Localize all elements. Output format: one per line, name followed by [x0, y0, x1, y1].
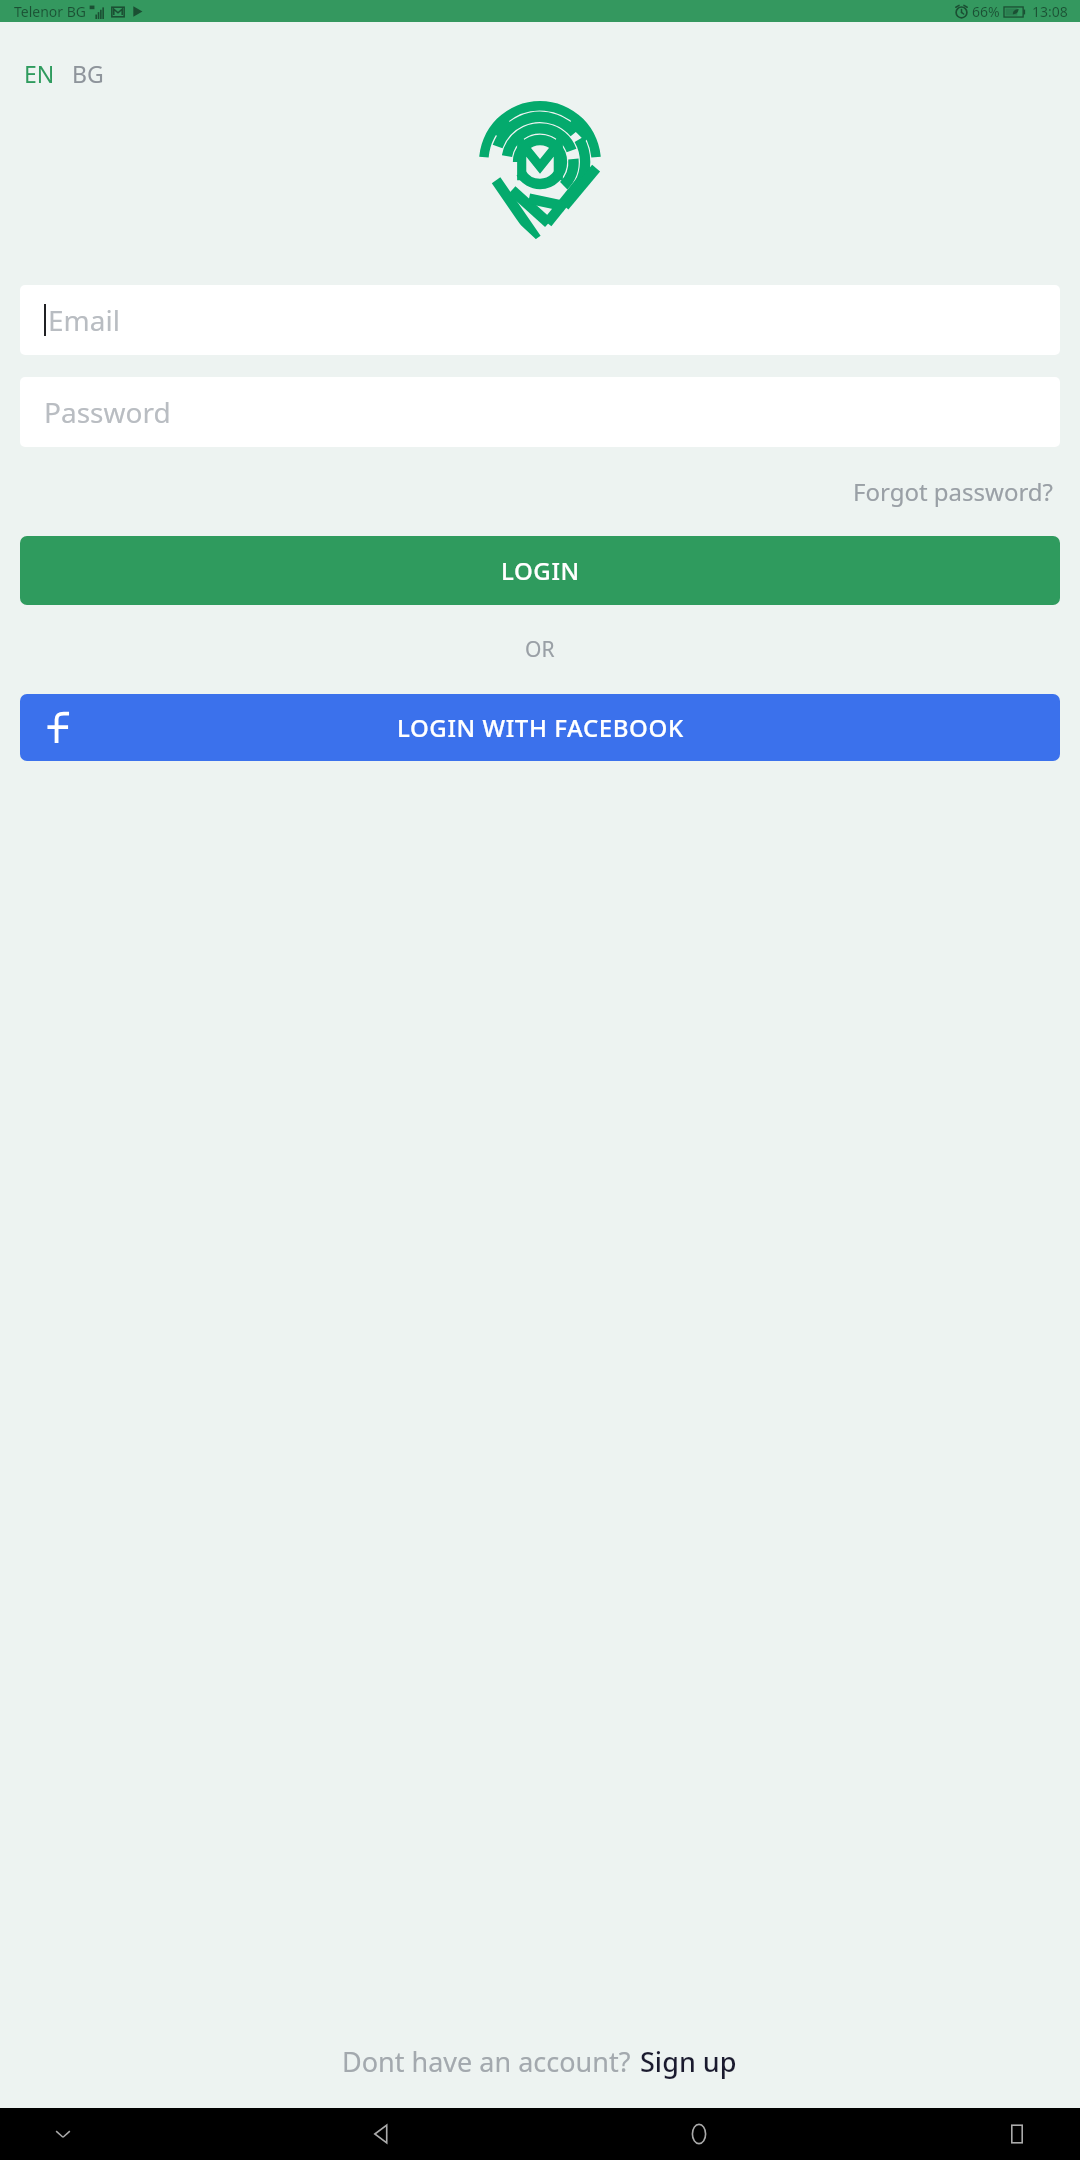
staticText: Sign up [640, 2043, 737, 2080]
staticText: EN [24, 58, 55, 89]
staticText: Telenor BG [14, 2, 87, 21]
button[interactable]: LOGIN WITH FACEBOOK [20, 694, 1060, 761]
button[interactable]: Recent apps [994, 2111, 1040, 2157]
staticText: OR [525, 635, 555, 664]
staticText: 66% [972, 2, 1000, 21]
button[interactable]: Hide keyboard [40, 2111, 86, 2157]
staticText: Email [48, 301, 120, 339]
button[interactable]: Sign up [638, 2041, 739, 2082]
staticText: Forgot password? [853, 475, 1054, 508]
button[interactable]: Email [20, 285, 1060, 355]
button[interactable]: Password [20, 377, 1060, 447]
staticText: LOGIN WITH FACEBOOK [397, 711, 684, 744]
staticText: LOGIN [501, 554, 580, 587]
button[interactable]: EN [22, 56, 57, 91]
button[interactable]: Home [676, 2111, 722, 2157]
button[interactable]: LOGIN [20, 536, 1060, 605]
staticText: BG [72, 58, 104, 89]
button[interactable]: Forgot password? [847, 469, 1060, 514]
button[interactable]: Back [358, 2111, 404, 2157]
staticText: Password [44, 393, 171, 431]
staticText: 13:08 [1032, 2, 1068, 21]
button[interactable]: BG [70, 56, 106, 91]
staticText: Dont have an account? [342, 2043, 638, 2080]
